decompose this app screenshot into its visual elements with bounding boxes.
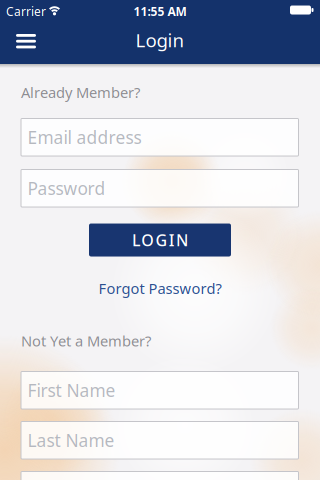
staticText: Last Name <box>27 429 114 452</box>
staticText: Email address <box>27 126 141 149</box>
staticText: Carrier <box>6 3 46 19</box>
staticText: Password <box>27 177 105 200</box>
staticText: 11:55 AM <box>133 3 186 19</box>
staticText: Already Member? <box>21 82 140 102</box>
staticText: Forgot Password? <box>98 278 221 298</box>
staticText: Login <box>135 28 184 52</box>
staticText: First Name <box>27 379 115 402</box>
staticText: LOGIN <box>132 229 188 251</box>
staticText: Not Yet a Member? <box>21 331 151 350</box>
